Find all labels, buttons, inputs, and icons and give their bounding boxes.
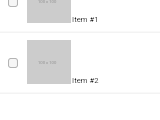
button[interactable]: Select Item #2 (8, 58, 18, 68)
button[interactable]: Select Item #1 (8, 0, 18, 7)
staticText: 100 x 100 (38, 0, 57, 4)
staticText: Item #1 (72, 15, 99, 24)
staticText: Item #2 (72, 76, 99, 85)
button[interactable]: Select Item #2 (0, 32, 160, 93)
staticText: 100 x 100 (38, 60, 57, 65)
button[interactable]: Select Item #1 (0, 0, 160, 32)
